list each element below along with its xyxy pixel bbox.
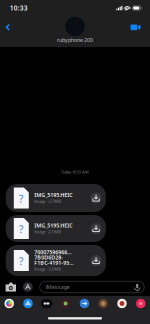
staticText: IMG_5195.HEIC bbox=[34, 191, 72, 198]
button[interactable]: App 1 bbox=[0, 296, 19, 311]
button[interactable]: App 2 bbox=[19, 296, 37, 311]
button[interactable]: App 6 bbox=[94, 296, 113, 311]
button[interactable]: App 8 bbox=[131, 296, 150, 311]
button[interactable]: App 7 bbox=[113, 296, 131, 311]
button[interactable]: FaceTime video call bbox=[126, 17, 144, 37]
button[interactable]: Apps bbox=[20, 279, 36, 295]
button[interactable]: App 5 bbox=[75, 296, 94, 311]
staticText: ? bbox=[19, 222, 24, 236]
staticText: Image · 2.7 MB bbox=[34, 229, 61, 234]
staticText: 70007596966… bbox=[34, 249, 71, 256]
staticText: ? bbox=[19, 191, 24, 206]
button[interactable]: iMessage bbox=[40, 281, 144, 293]
button[interactable]: Download attachment bbox=[90, 254, 102, 267]
staticText: ? bbox=[19, 254, 24, 268]
staticText: Image · 2.7 MB bbox=[34, 198, 61, 204]
staticText: IMG_5195.HEIC bbox=[34, 222, 72, 229]
staticText: 7B0D6D28- bbox=[34, 254, 63, 261]
button[interactable]: App 3 bbox=[37, 296, 56, 311]
button[interactable]: Download attachment bbox=[90, 192, 102, 204]
staticText: 10:33 bbox=[10, 4, 28, 12]
button[interactable]: Download attachment bbox=[90, 222, 102, 235]
staticText: Image · 3.3 MB bbox=[34, 266, 61, 271]
staticText: Today 10:31 AM bbox=[61, 169, 89, 174]
button[interactable]: Back bbox=[0, 17, 15, 37]
button[interactable]: App 4 bbox=[56, 296, 75, 311]
staticText: F1BC-4191-95… bbox=[34, 259, 73, 266]
staticText: iMessage bbox=[46, 283, 70, 291]
button[interactable]: Camera bbox=[3, 279, 19, 295]
staticText: rubyphone 200 bbox=[57, 36, 93, 43]
